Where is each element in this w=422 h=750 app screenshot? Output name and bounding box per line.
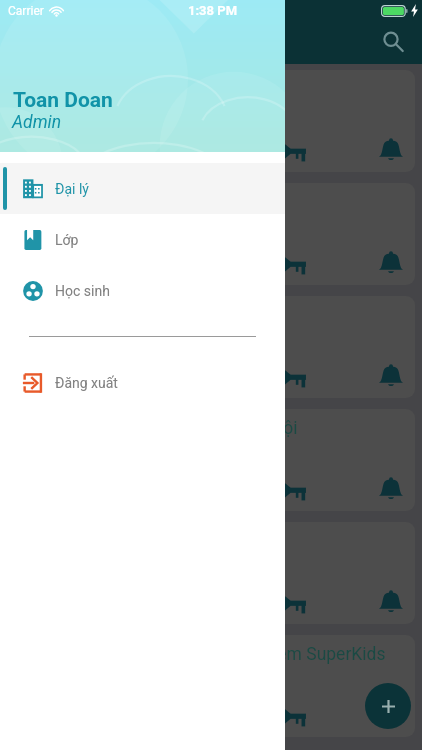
button[interactable]: Trung tâm đào tạo tiếng Anh trẻ em Super… [7, 635, 415, 737]
button[interactable]: Học sinh [0, 265, 285, 316]
button[interactable]: Hệ thống giáo dục Sao Mai [7, 296, 415, 398]
staticText: Toan Doan [13, 88, 113, 113]
button[interactable]: Đại lý [0, 163, 285, 214]
button[interactable]: Đăng xuất [0, 357, 285, 408]
staticText: 1:38 PM [188, 3, 238, 18]
staticText: Đại lý [55, 181, 89, 197]
staticText: Đăng xuất [55, 375, 118, 391]
button[interactable]: Trung tâm Anh ngữ AMA [7, 70, 415, 172]
staticText: Trường Mầm non Ban Mai [26, 192, 229, 213]
staticText: Admin [12, 112, 62, 133]
staticText: Carrier [8, 4, 44, 18]
staticText: Trung tâm Anh ngữ AMA [26, 79, 219, 100]
button[interactable]: Trung tâm Ngoại ngữ VIP [7, 522, 415, 624]
button[interactable]: Trung tâm Anh ngữ Quốc tế Hà Nội [7, 409, 415, 511]
button[interactable]: Trường Mầm non Ban Mai [7, 183, 415, 285]
staticText: Trung tâm đào tạo tiếng Anh trẻ em Super… [26, 644, 386, 665]
staticText: Trung tâm Anh ngữ Quốc tế Hà Nội [26, 418, 298, 439]
staticText: Lớp [55, 232, 79, 248]
button[interactable]: Search [375, 25, 409, 59]
button[interactable]: Lớp [0, 214, 285, 265]
button[interactable]: Add [365, 683, 411, 729]
staticText: Học sinh [55, 283, 110, 299]
